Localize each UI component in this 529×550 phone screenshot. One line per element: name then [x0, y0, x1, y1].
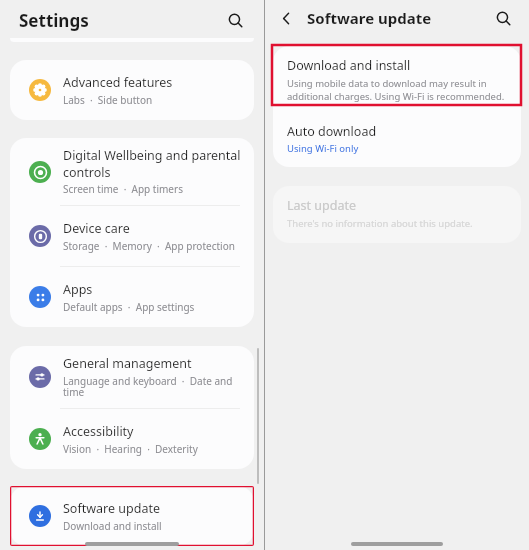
staticText: Download and install	[63, 519, 162, 533]
staticText: Language and keyboard · Date and time	[63, 374, 242, 399]
button[interactable]: Device care	[10, 206, 254, 266]
button[interactable]: Apps	[10, 267, 254, 327]
button[interactable]: General management	[10, 346, 254, 408]
button[interactable]: Search	[222, 7, 248, 33]
staticText: Apps	[63, 281, 93, 298]
staticText: Using Wi-Fi only	[287, 142, 359, 155]
staticText: Screen time · App timers	[63, 182, 183, 196]
button[interactable]: Back	[273, 5, 299, 31]
button[interactable]: Digital Wellbeing and parental controls	[10, 138, 254, 205]
staticText: Software update	[307, 8, 432, 28]
staticText: Using mobile data to download may result…	[287, 77, 505, 103]
staticText: Default apps · App settings	[63, 300, 195, 314]
staticText: Software update	[63, 500, 160, 517]
staticText: Settings	[19, 9, 89, 32]
staticText: Vision · Hearing · Dexterity	[63, 442, 198, 456]
staticText: Storage · Memory · App protection	[63, 239, 235, 253]
button[interactable]: Accessibility	[10, 409, 254, 469]
button[interactable]: Auto download	[273, 114, 521, 167]
staticText: Digital Wellbeing and parental controls	[63, 147, 241, 180]
staticText: Last update	[287, 197, 356, 214]
staticText: General management	[63, 355, 192, 372]
staticText: Accessibility	[63, 423, 134, 440]
button[interactable]: Last update	[273, 186, 521, 243]
staticText: Advanced features	[63, 74, 173, 91]
button[interactable]: Advanced features	[10, 60, 254, 120]
staticText: Download and install	[287, 57, 411, 74]
staticText: Auto download	[287, 123, 377, 140]
staticText: There's no information about this update…	[287, 217, 473, 230]
staticText: Device care	[63, 220, 130, 237]
button[interactable]: Search	[490, 5, 516, 31]
button[interactable]: Download and install	[273, 46, 521, 114]
button[interactable]: Software update	[10, 486, 254, 546]
staticText: Labs · Side button	[63, 93, 153, 107]
